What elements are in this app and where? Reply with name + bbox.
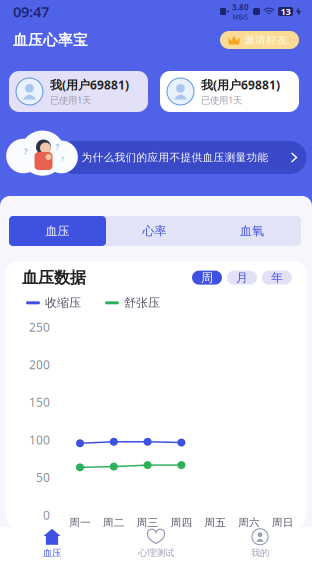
- staticText: 周一: [69, 516, 91, 529]
- button[interactable]: 血氧: [203, 216, 301, 246]
- button[interactable]: 周: [192, 271, 222, 285]
- staticText: 周五: [204, 516, 226, 529]
- staticText: 周二: [103, 516, 125, 529]
- staticText: 13: [280, 5, 290, 18]
- button[interactable]: 血压: [9, 216, 106, 246]
- staticText: 50: [36, 469, 50, 485]
- button[interactable]: 心率: [106, 216, 203, 246]
- staticText: 血压: [45, 224, 69, 238]
- staticText: 血压心率宝: [13, 31, 88, 49]
- staticText: 我(用户69881): [201, 77, 280, 93]
- staticText: 周六: [238, 516, 260, 529]
- staticText: ?: [61, 155, 64, 163]
- staticText: 月: [236, 270, 248, 285]
- staticText: 250: [29, 319, 50, 335]
- button[interactable]: 月: [227, 271, 257, 285]
- staticText: 为什么我们的应用不提供血压测量功能: [81, 151, 268, 164]
- staticText: 150: [29, 394, 50, 410]
- staticText: ?: [23, 145, 27, 157]
- button[interactable]: 邀请好友: [220, 31, 299, 49]
- staticText: 09:47: [13, 2, 49, 21]
- staticText: 周日: [272, 516, 294, 529]
- staticText: 年: [271, 270, 283, 285]
- staticText: 周四: [170, 516, 192, 529]
- staticText: 已使用1天: [201, 94, 242, 106]
- staticText: 心率: [142, 224, 166, 238]
- staticText: 舒张压: [124, 295, 160, 310]
- staticText: 血压数据: [22, 268, 86, 287]
- staticText: 收缩压: [45, 295, 81, 310]
- staticText: 血氧: [240, 224, 264, 238]
- staticText: 100: [29, 432, 50, 448]
- staticText: ?: [55, 142, 59, 152]
- button[interactable]: 心理测试: [104, 527, 208, 561]
- button[interactable]: 年: [262, 271, 292, 285]
- staticText: 血压: [43, 547, 61, 559]
- button[interactable]: 我的: [208, 527, 312, 561]
- staticText: 200: [29, 357, 50, 372]
- staticText: 3.80: [232, 2, 249, 12]
- button[interactable]: 血压: [0, 527, 104, 561]
- staticText: 我的: [251, 547, 269, 559]
- button[interactable]: 我(用户69881): [9, 71, 148, 112]
- staticText: 已使用1天: [50, 94, 91, 106]
- staticText: 周三: [137, 516, 159, 529]
- staticText: 心理测试: [138, 547, 174, 559]
- button[interactable]: 我(用户69881): [160, 71, 299, 112]
- staticText: 0: [43, 507, 50, 523]
- button[interactable]: 为什么我们的应用不提供血压测量功能: [57, 141, 306, 174]
- staticText: 邀请好友: [244, 33, 288, 46]
- staticText: 我(用户69881): [50, 77, 129, 93]
- staticText: 周: [201, 270, 213, 285]
- staticText: MB/S: [232, 12, 248, 21]
